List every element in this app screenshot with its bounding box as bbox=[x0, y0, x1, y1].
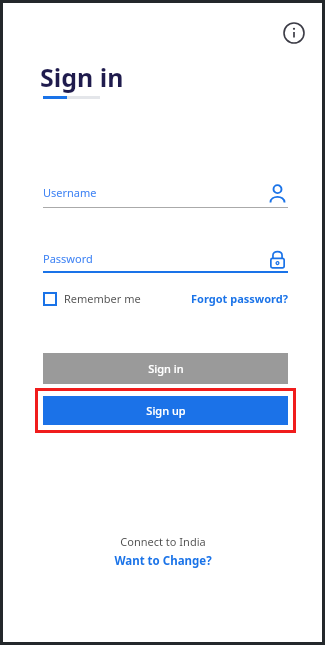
button[interactable]: Want to Change? bbox=[114, 553, 212, 569]
staticText: Username bbox=[43, 185, 97, 200]
button[interactable]: Remember me bbox=[43, 291, 141, 306]
button[interactable]: Forgot password? bbox=[191, 291, 288, 306]
button[interactable]: Show password bbox=[264, 246, 290, 272]
staticText: Connect to India bbox=[120, 534, 206, 549]
staticText: Sign in bbox=[148, 361, 184, 376]
button[interactable]: Username bbox=[264, 180, 290, 206]
staticText: Password bbox=[43, 251, 93, 266]
button[interactable]: Information bbox=[278, 17, 310, 49]
staticText: Remember me bbox=[64, 291, 141, 306]
staticText: Sign up bbox=[146, 403, 186, 418]
button[interactable]: Sign up bbox=[43, 396, 288, 425]
staticText: Sign in bbox=[40, 60, 124, 94]
button[interactable]: Sign in bbox=[43, 353, 288, 384]
